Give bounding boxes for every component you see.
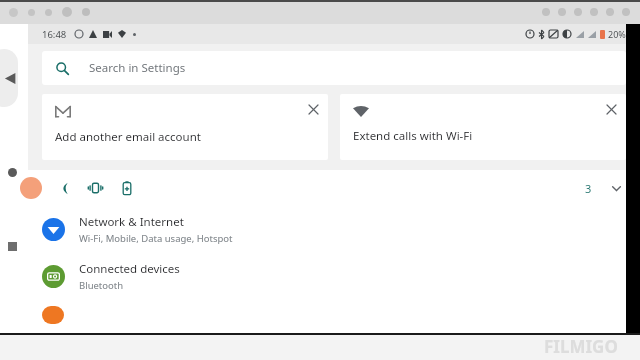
staticText: Add another email account xyxy=(55,129,201,145)
button[interactable]: Vibrate xyxy=(82,175,108,201)
button[interactable]: Do not disturb xyxy=(50,175,76,201)
button[interactable]: Battery saver xyxy=(114,175,140,201)
button[interactable]: Home xyxy=(8,168,17,177)
button[interactable]: Dismiss xyxy=(602,100,620,118)
button[interactable] xyxy=(28,300,640,324)
staticText: Search in Settings xyxy=(89,60,186,76)
staticText: FILMIGO xyxy=(544,335,618,358)
staticText: Connected devices xyxy=(79,261,180,277)
staticText: Extend calls with Wi-Fi xyxy=(353,128,473,144)
staticText: Network & Internet xyxy=(79,214,184,230)
button[interactable]: Search in Settings xyxy=(42,51,626,85)
staticText: 3 xyxy=(585,181,592,196)
button[interactable]: Expand xyxy=(606,178,626,198)
staticText: 20% xyxy=(608,28,626,40)
button[interactable]: Extend calls with Wi-Fi xyxy=(340,94,626,160)
button[interactable]: Network & Internet xyxy=(28,206,640,253)
button[interactable]: Add another email account xyxy=(42,94,328,160)
button[interactable]: Back xyxy=(0,49,18,107)
staticText: 16:48 xyxy=(42,28,67,41)
staticText: Wi-Fi, Mobile, Data usage, Hotspot xyxy=(79,232,233,245)
button[interactable]: Connected devices xyxy=(28,253,640,300)
staticText: Bluetooth xyxy=(79,279,124,292)
button[interactable]: Dismiss xyxy=(304,100,322,118)
